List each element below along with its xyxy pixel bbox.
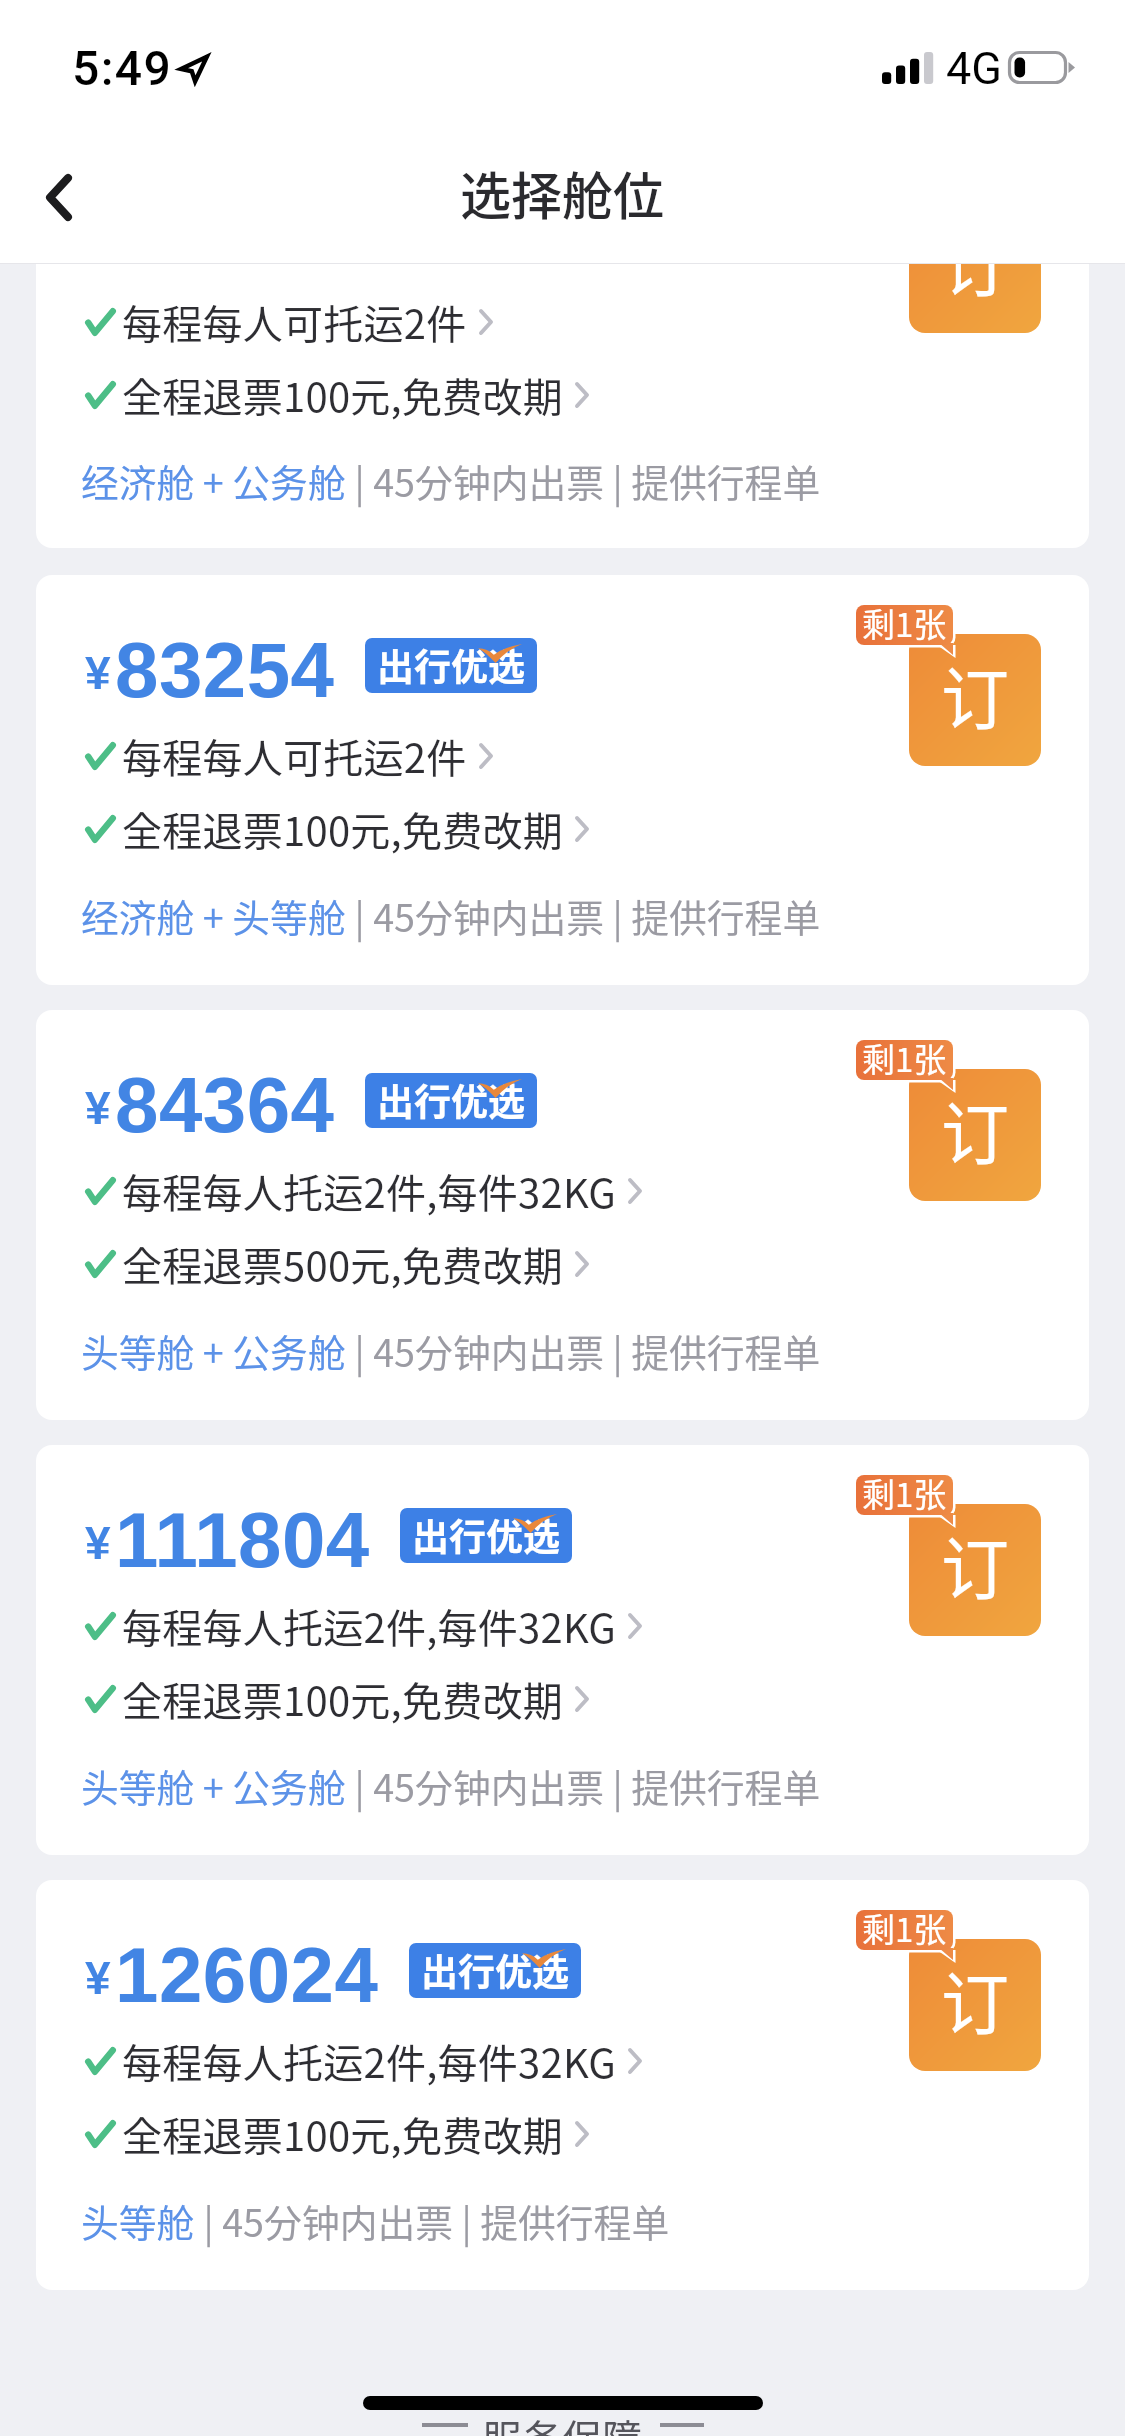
staticText: 订: [941, 1515, 1010, 1613]
staticText: 剩1张: [862, 1904, 947, 1952]
button[interactable]: Back: [0, 132, 150, 264]
button[interactable]: 每程每人托运2件,每件32KG: [85, 1593, 642, 1659]
staticText: 剩1张: [862, 599, 947, 647]
button[interactable]: 全程退票100元,免费改期: [85, 2101, 589, 2167]
staticText: 5:49: [72, 40, 173, 96]
staticText: 每程每人可托运2件: [122, 727, 467, 785]
staticText: 全程退票100元,免费改期: [122, 2105, 563, 2163]
staticText: 出行优选: [377, 1073, 525, 1127]
button[interactable]: ¥: [36, 1880, 1089, 2290]
staticText: | 45分钟内出票 | 提供行程单: [346, 1323, 821, 1378]
button[interactable]: 经济舱 + 头等舱: [81, 884, 821, 947]
staticText: ¥: [85, 647, 111, 698]
button[interactable]: 预订: [909, 634, 1041, 766]
button[interactable]: 预订: [909, 1069, 1041, 1201]
staticText: ¥: [85, 1517, 111, 1568]
staticText: 全程退票100元,免费改期: [122, 800, 563, 858]
staticText: 126024: [115, 1931, 379, 2018]
staticText: 剩1张: [862, 1034, 947, 1082]
staticText: 订: [941, 1080, 1010, 1178]
staticText: 每程每人托运2件,每件32KG: [122, 1162, 616, 1220]
button[interactable]: 预订: [909, 264, 1041, 333]
staticText: 头等舱 + 公务舱: [81, 1323, 346, 1378]
staticText: 订: [941, 1950, 1010, 2048]
staticText: 出行优选: [412, 1508, 560, 1562]
staticText: 出行优选: [377, 638, 525, 692]
staticText: ¥: [85, 1952, 111, 2003]
button[interactable]: 头等舱 + 公务舱: [81, 1754, 821, 1817]
staticText: 剩1张: [862, 1469, 947, 1517]
staticText: 经济舱 + 头等舱: [81, 888, 346, 943]
button[interactable]: 全程退票100元,免费改期: [85, 362, 589, 428]
staticText: | 45分钟内出票 | 提供行程单: [346, 888, 821, 943]
staticText: | 45分钟内出票 | 提供行程单: [195, 2193, 670, 2248]
button[interactable]: 预订: [909, 1939, 1041, 2071]
staticText: 每程每人托运2件,每件32KG: [122, 1597, 616, 1655]
button[interactable]: 全程退票500元,免费改期: [85, 1231, 589, 1297]
button[interactable]: ¥: [36, 1010, 1089, 1420]
staticText: 服务保障: [482, 2408, 642, 2436]
staticText: | 45分钟内出票 | 提供行程单: [346, 453, 821, 508]
button[interactable]: 头等舱: [81, 2189, 670, 2252]
staticText: 全程退票500元,免费改期: [122, 1235, 563, 1293]
button[interactable]: ¥: [36, 575, 1089, 985]
button[interactable]: 每程每人托运2件,每件32KG: [85, 2028, 642, 2094]
staticText: 4G: [946, 42, 1002, 95]
button[interactable]: 全程退票100元,免费改期: [85, 1666, 589, 1732]
staticText: 111804: [115, 1496, 370, 1583]
staticText: 83254: [115, 626, 335, 713]
staticText: 订: [941, 264, 1010, 310]
button[interactable]: 头等舱 + 公务舱: [81, 1319, 821, 1382]
button[interactable]: 每程每人可托运2件: [36, 264, 1089, 548]
staticText: 全程退票100元,免费改期: [122, 1670, 563, 1728]
staticText: ¥: [85, 1082, 111, 1133]
staticText: 每程每人可托运2件: [122, 293, 467, 351]
staticText: 84364: [115, 1061, 335, 1148]
staticText: 头等舱: [81, 2193, 195, 2248]
button[interactable]: 预订: [909, 1504, 1041, 1636]
staticText: 头等舱 + 公务舱: [81, 1758, 346, 1813]
button[interactable]: 经济舱 + 公务舱: [81, 449, 821, 512]
button[interactable]: 全程退票100元,免费改期: [85, 796, 589, 862]
staticText: 每程每人托运2件,每件32KG: [122, 2032, 616, 2090]
button[interactable]: ¥: [36, 1445, 1089, 1855]
staticText: 订: [941, 645, 1010, 743]
staticText: 经济舱 + 公务舱: [81, 453, 346, 508]
staticText: | 45分钟内出票 | 提供行程单: [346, 1758, 821, 1813]
staticText: 全程退票100元,免费改期: [122, 366, 563, 424]
button[interactable]: 每程每人托运2件,每件32KG: [85, 1158, 642, 1224]
button[interactable]: 每程每人可托运2件: [85, 723, 493, 789]
staticText: 选择舱位: [460, 156, 665, 230]
button[interactable]: 每程每人可托运2件: [85, 289, 493, 355]
staticText: 出行优选: [421, 1943, 569, 1997]
